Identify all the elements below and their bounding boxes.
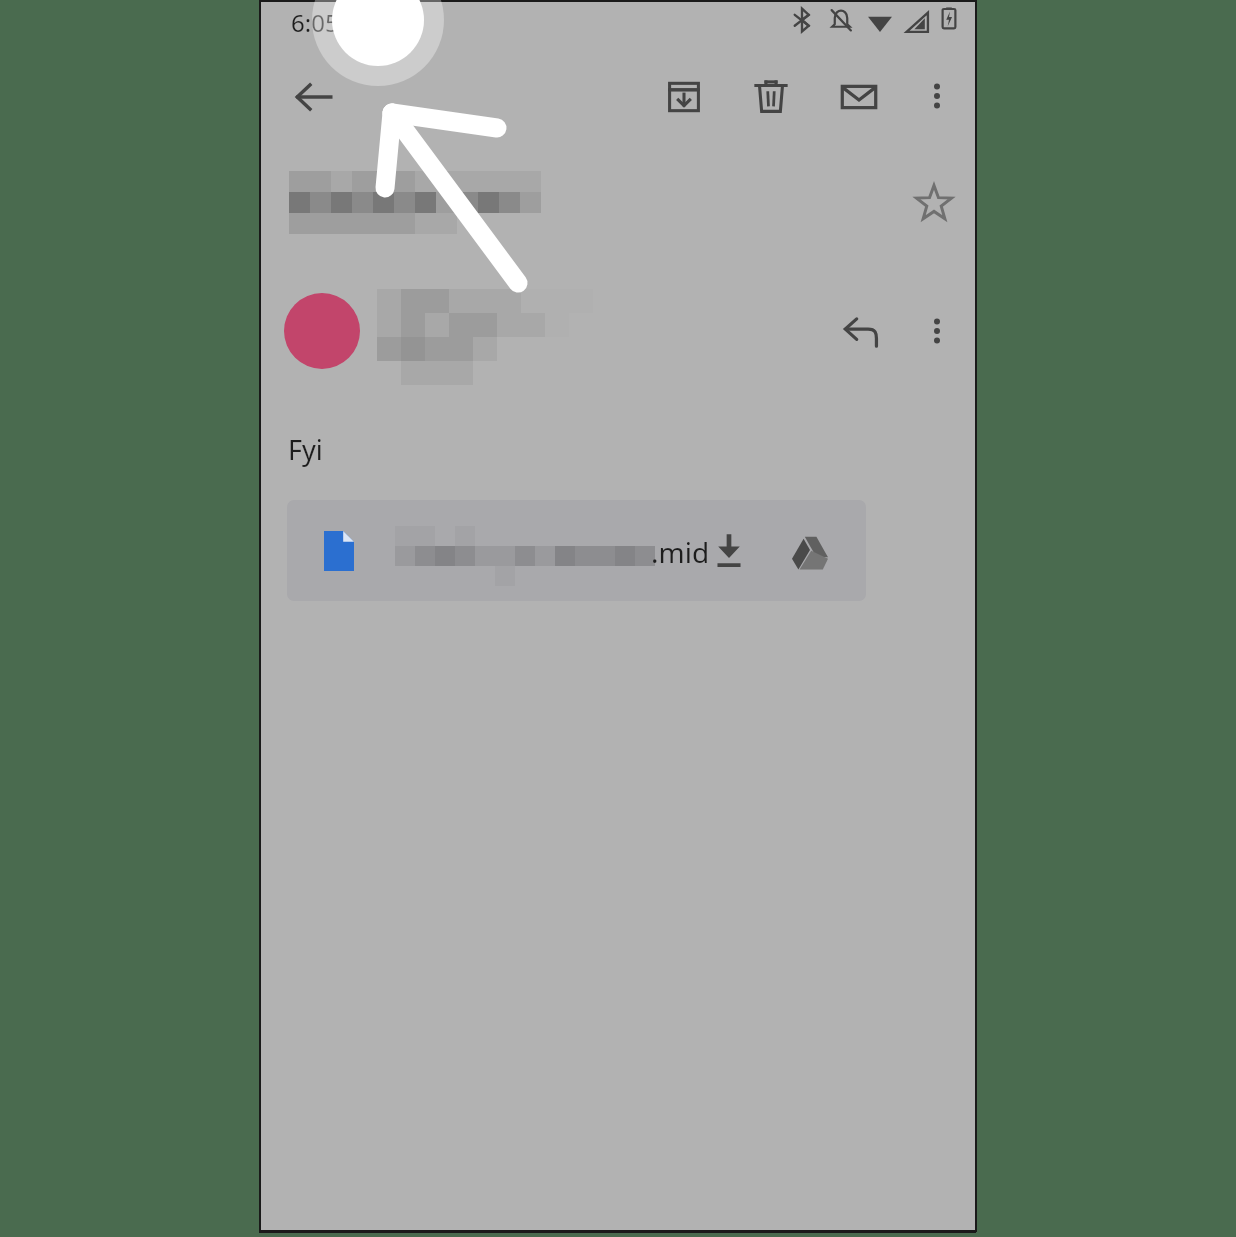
button[interactable]: Save to Drive <box>782 522 838 578</box>
button[interactable]: Reply <box>833 302 891 360</box>
button[interactable] <box>373 283 633 379</box>
button[interactable]: Archive <box>655 68 713 126</box>
button[interactable]: Mark unread <box>830 68 888 126</box>
staticText: 6:05 <box>291 6 339 39</box>
button[interactable]: Back <box>285 68 343 126</box>
button[interactable]: Star <box>905 174 963 232</box>
button[interactable] <box>281 165 841 245</box>
button[interactable]: .mid <box>287 500 866 601</box>
staticText: .mid <box>651 533 710 571</box>
staticText: Fyi <box>288 431 323 468</box>
button[interactable]: More options <box>909 303 964 358</box>
button[interactable]: More options <box>909 68 964 123</box>
button[interactable] <box>284 293 360 369</box>
button[interactable]: Delete <box>742 68 800 126</box>
button[interactable]: Download <box>701 522 757 578</box>
